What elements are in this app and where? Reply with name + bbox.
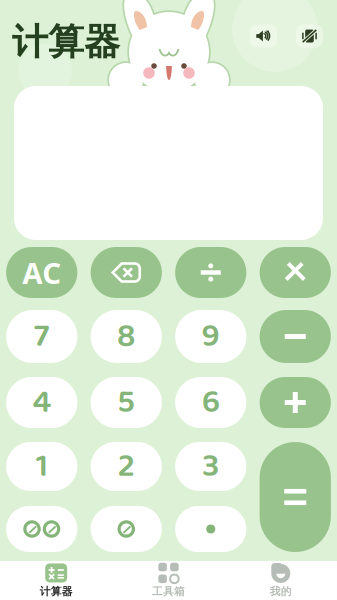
button[interactable]: 4 bbox=[6, 377, 77, 428]
staticText: 5 bbox=[117, 376, 135, 429]
button[interactable]: 6 bbox=[175, 377, 246, 428]
button[interactable]: 5 bbox=[91, 377, 162, 428]
button[interactable]: Decimal point bbox=[175, 506, 246, 552]
button[interactable]: 7 bbox=[6, 310, 77, 363]
button[interactable]: 1 bbox=[6, 442, 77, 491]
staticText: 工具箱 bbox=[152, 585, 185, 598]
button[interactable]: 计算器 bbox=[0, 561, 112, 600]
staticText: 6 bbox=[202, 376, 220, 429]
button[interactable]: 我的 bbox=[225, 561, 337, 600]
staticText: 3 bbox=[202, 440, 219, 493]
button[interactable]: Plus bbox=[260, 377, 331, 428]
button[interactable]: 9 bbox=[175, 310, 246, 363]
button[interactable]: Multiply bbox=[260, 247, 331, 298]
button[interactable]: Double zero bbox=[6, 506, 77, 552]
button[interactable]: Sound on bbox=[250, 24, 277, 47]
button[interactable]: 工具箱 bbox=[112, 561, 225, 600]
button[interactable]: AC bbox=[6, 247, 77, 298]
button[interactable]: Equals bbox=[260, 442, 331, 552]
staticText: 1 bbox=[36, 440, 48, 493]
button[interactable]: 3 bbox=[175, 442, 246, 491]
staticText: 2 bbox=[118, 440, 135, 493]
staticText: 7 bbox=[34, 310, 50, 363]
staticText: 8 bbox=[117, 310, 136, 363]
button[interactable]: Delete bbox=[91, 247, 162, 298]
button[interactable]: 8 bbox=[91, 310, 162, 363]
button[interactable]: 2 bbox=[91, 442, 162, 491]
staticText: 我的 bbox=[270, 585, 292, 598]
button[interactable]: Divide bbox=[175, 247, 246, 298]
staticText: AC bbox=[22, 253, 61, 292]
staticText: 计算器 bbox=[12, 20, 120, 64]
staticText: 计算器 bbox=[40, 585, 73, 598]
button[interactable]: Zero bbox=[91, 506, 162, 552]
staticText: 4 bbox=[32, 376, 51, 429]
button[interactable]: Minus bbox=[260, 310, 331, 363]
staticText: 9 bbox=[201, 310, 220, 363]
button[interactable]: Vibration off bbox=[296, 24, 323, 47]
